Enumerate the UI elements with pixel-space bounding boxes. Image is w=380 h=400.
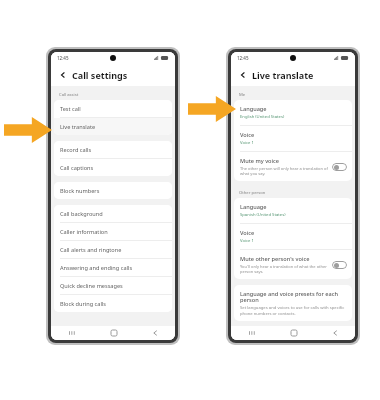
staticText: Voice 1 [240,140,254,146]
button[interactable]: Call background [54,205,172,222]
button[interactable]: Quick decline messages [54,277,172,294]
button[interactable]: Back [237,69,249,81]
button[interactable]: Voice [234,224,352,249]
staticText: Live translate [60,123,96,131]
staticText: Call settings [72,69,128,81]
button[interactable]: Back [134,326,175,340]
button[interactable]: Back [57,69,69,81]
button[interactable]: Toggle [332,163,347,171]
button[interactable]: Caller information [54,223,172,240]
staticText: Caller information [60,228,108,236]
button[interactable]: Home [93,326,134,340]
button[interactable]: Record calls [54,141,172,158]
button[interactable]: Toggle [332,261,347,269]
staticText: Voice [240,131,255,139]
staticText: Call background [60,210,103,218]
button[interactable]: Recents [51,326,93,340]
staticText: Me [239,92,246,98]
staticText: Live translate [252,69,314,81]
button[interactable]: Mute my voice [234,152,352,181]
button[interactable]: Test call [54,100,172,117]
staticText: The other person will only hear a transl… [240,166,328,176]
staticText: Voice 1 [240,238,254,244]
button[interactable]: Block during calls [54,295,172,312]
staticText: Answering and ending calls [60,264,133,272]
staticText: Quick decline messages [60,282,123,290]
staticText: You'll only hear a translation of what t… [240,264,328,274]
button[interactable]: Answering and ending calls [54,259,172,276]
button[interactable]: Language and voice presets for each pers… [234,285,352,321]
staticText: Call assist [59,92,79,98]
staticText: Language and voice presets for each pers… [240,290,346,304]
staticText: English (United States) [240,114,285,120]
button[interactable]: Recents [231,326,273,340]
staticText: Block numbers [60,187,100,195]
staticText: 12:45 [237,55,249,61]
staticText: Voice [240,229,255,237]
staticText: Language [240,203,267,211]
staticText: Mute my voice [240,157,279,165]
button[interactable]: Call alerts and ringtone [54,241,172,258]
staticText: Block during calls [60,300,106,308]
staticText: Language [240,105,267,113]
staticText: 12:45 [57,55,69,61]
button[interactable]: Back [314,326,355,340]
staticText: Test call [60,105,81,113]
button[interactable]: Block numbers [54,182,172,199]
button[interactable]: Call captions [54,159,172,176]
staticText: Call alerts and ringtone [60,246,122,254]
button[interactable]: Home [273,326,314,340]
staticText: Set languages and voices to use for call… [240,305,346,316]
button[interactable]: Language [234,100,352,125]
staticText: Record calls [60,146,92,154]
button[interactable]: Voice [234,126,352,151]
button[interactable]: Language [234,198,352,223]
staticText: Other person [239,190,266,196]
button[interactable]: Mute other person's voice [234,250,352,279]
staticText: Mute other person's voice [240,255,310,263]
button[interactable]: Live translate [54,118,172,135]
staticText: Call captions [60,164,94,172]
staticText: Spanish (United States) [240,212,286,218]
